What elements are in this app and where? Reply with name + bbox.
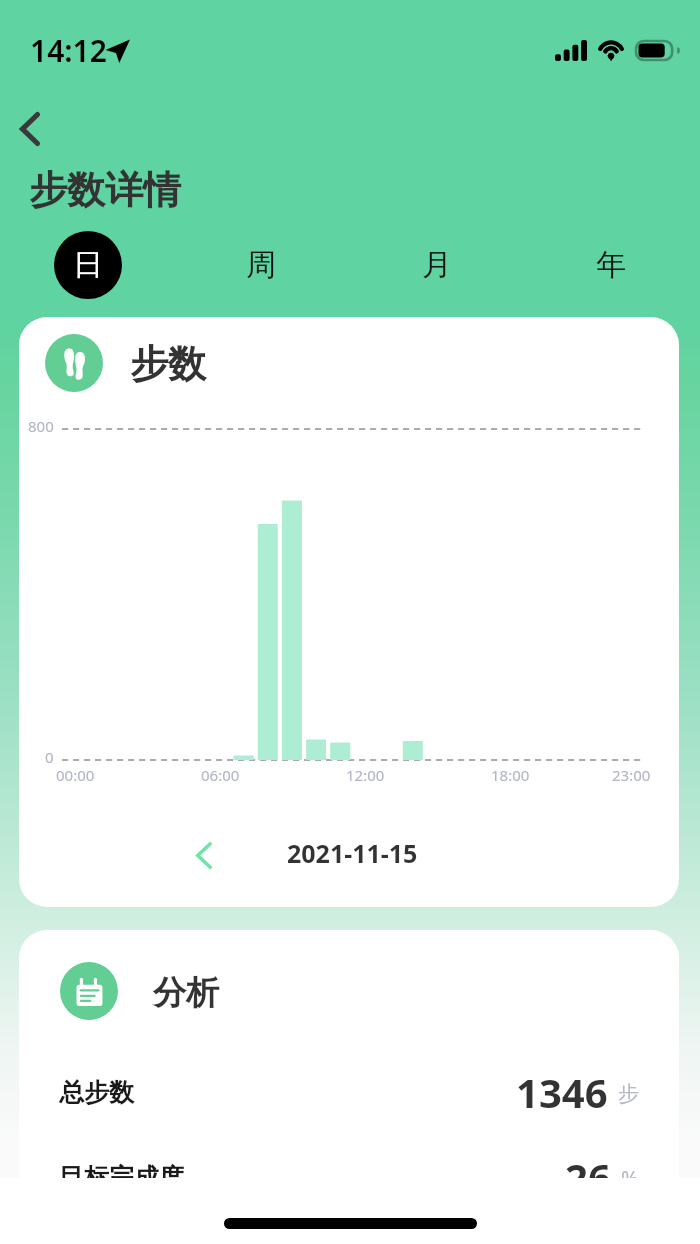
staticText: 步数详情	[29, 166, 181, 214]
staticText: 26	[565, 1150, 611, 1204]
staticText: 步数	[130, 340, 206, 388]
staticText: 0	[45, 747, 54, 767]
button[interactable]: 目标完成度	[19, 1149, 679, 1205]
staticText: 18:00	[491, 765, 530, 785]
button[interactable]: 日	[54, 231, 122, 299]
staticText: 23:00	[612, 765, 651, 785]
staticText: 2021-11-15	[287, 836, 418, 870]
staticText: 12:00	[346, 765, 385, 785]
staticText: 1346	[516, 1065, 608, 1119]
staticText: 00:00	[56, 765, 95, 785]
staticText: 年	[596, 246, 626, 284]
staticText: 总步数	[59, 1077, 134, 1108]
staticText: 月	[422, 246, 452, 284]
staticText: 800	[28, 416, 54, 436]
button[interactable]: 月	[403, 231, 471, 299]
staticText: 14:12	[30, 30, 107, 71]
staticText: 周	[246, 246, 276, 284]
staticText: 分析	[153, 972, 219, 1014]
staticText: %	[621, 1165, 639, 1194]
staticText: 06:00	[201, 765, 240, 785]
button[interactable]: Previous day	[176, 829, 232, 881]
staticText: 日	[73, 246, 103, 284]
staticText: 步	[618, 1081, 639, 1107]
button[interactable]: Back	[2, 101, 58, 157]
button[interactable]: 年	[577, 231, 645, 299]
button[interactable]: 周	[227, 231, 295, 299]
button[interactable]: 总步数	[19, 1064, 679, 1120]
staticText: 目标完成度	[59, 1162, 184, 1193]
